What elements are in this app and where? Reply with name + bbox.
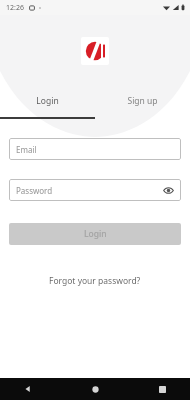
staticText: Email: [16, 144, 174, 155]
staticText: Password: [16, 185, 162, 196]
staticText: Sign up: [127, 95, 158, 107]
button[interactable]: Sign up: [95, 91, 190, 111]
button[interactable]: Forgot your password?: [43, 272, 147, 290]
button[interactable]: Recent apps: [152, 379, 172, 399]
button[interactable]: App logo: [81, 37, 109, 65]
staticText: 12:26: [6, 3, 24, 13]
button[interactable]: Back: [18, 379, 38, 399]
button[interactable]: Login: [0, 91, 95, 111]
staticText: Login: [36, 95, 59, 107]
staticText: Forgot your password?: [49, 275, 141, 287]
button[interactable]: Password: [9, 179, 181, 201]
button[interactable]: Login: [9, 223, 181, 245]
button[interactable]: Home: [85, 379, 105, 399]
button[interactable]: Show password: [162, 184, 174, 196]
button[interactable]: Email: [9, 138, 181, 160]
staticText: Login: [84, 228, 107, 240]
